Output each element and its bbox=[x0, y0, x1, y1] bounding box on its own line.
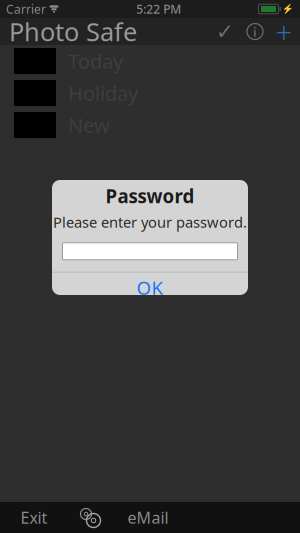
staticText: Exit bbox=[20, 507, 47, 528]
button[interactable]: OK bbox=[52, 272, 248, 302]
staticText: 5:22 PM bbox=[136, 1, 181, 17]
button[interactable]: Done bbox=[210, 18, 240, 45]
staticText: Holiday bbox=[68, 80, 138, 106]
button[interactable]: eMail bbox=[118, 502, 178, 533]
staticText: Today bbox=[68, 48, 123, 74]
staticText: ⚡ bbox=[282, 4, 294, 14]
staticText: ✓ bbox=[216, 19, 234, 44]
staticText: Please enter your password. bbox=[53, 212, 247, 232]
button[interactable]: Exit bbox=[6, 502, 62, 533]
staticText: + bbox=[275, 12, 292, 51]
staticText: Photo Safe bbox=[9, 15, 137, 48]
staticText: OK bbox=[136, 275, 163, 300]
staticText: Carrier bbox=[6, 1, 46, 17]
staticText: New bbox=[68, 112, 110, 138]
button[interactable]: Info bbox=[240, 18, 270, 45]
staticText: eMail bbox=[127, 507, 168, 528]
button[interactable]: Add bbox=[270, 18, 298, 45]
staticText: i bbox=[253, 23, 257, 40]
button[interactable]: New bbox=[0, 109, 300, 141]
staticText: Password bbox=[105, 183, 194, 208]
button[interactable]: Holiday bbox=[0, 77, 300, 109]
button[interactable]: Settings bbox=[62, 502, 118, 533]
button[interactable]: Today bbox=[0, 45, 300, 77]
